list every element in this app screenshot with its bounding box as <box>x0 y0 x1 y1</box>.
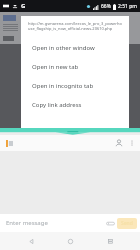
button[interactable]: Attach file <box>103 216 117 230</box>
button[interactable]: More options <box>126 137 138 149</box>
staticText: Open in other window <box>32 44 95 52</box>
staticText: Copy link address <box>32 101 82 109</box>
staticText: http://m.gsmarena.com/leecos_le_pro_3_po… <box>28 21 122 31</box>
staticText: 66% <box>101 3 111 10</box>
staticText: Enter message <box>6 219 103 227</box>
button[interactable]: Bookmarks <box>4 138 15 149</box>
staticText: Open in new tab <box>32 63 79 71</box>
staticText: G <box>21 2 26 10</box>
button[interactable]: Open in new tab <box>21 57 129 76</box>
button[interactable]: Copy link address <box>21 95 129 114</box>
staticText: 2:51 pm <box>118 3 137 10</box>
button[interactable]: Open in other window <box>21 38 129 57</box>
button[interactable]: Send <box>117 218 137 229</box>
button[interactable]: Account <box>112 136 126 150</box>
staticText: Open in incognito tab <box>32 82 94 90</box>
button[interactable]: Open in incognito tab <box>21 76 129 95</box>
staticText: Send <box>121 220 133 227</box>
button[interactable]: Home <box>61 232 79 250</box>
button[interactable]: Recent apps <box>101 232 119 250</box>
button[interactable]: Back <box>22 232 40 250</box>
